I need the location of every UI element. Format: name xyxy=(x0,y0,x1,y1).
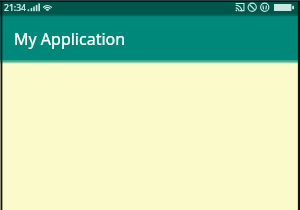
button[interactable]: My Application xyxy=(0,0,300,62)
other: Status bar xyxy=(0,0,300,16)
staticText: My Application xyxy=(14,28,126,50)
staticText: 21:34 xyxy=(4,2,27,14)
